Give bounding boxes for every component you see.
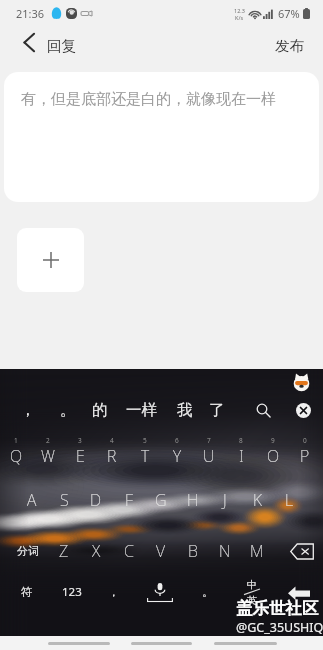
button[interactable]: 我 — [166, 395, 204, 425]
button[interactable]: 8 — [225, 431, 257, 475]
staticText: K — [253, 489, 262, 511]
button[interactable]: J — [209, 478, 241, 522]
button[interactable]: V — [145, 529, 177, 573]
staticText: M — [250, 540, 264, 562]
button[interactable]: Backspace — [281, 531, 323, 571]
staticText: W — [41, 445, 55, 467]
button[interactable]: 3 — [64, 431, 96, 475]
staticText: 一样 — [126, 400, 157, 420]
staticText: 12.3 — [234, 7, 245, 14]
staticText: T — [141, 445, 150, 467]
button[interactable]: 一样 — [122, 395, 160, 425]
staticText: S — [60, 489, 69, 511]
staticText: 盖乐世社区 — [236, 598, 319, 619]
button[interactable]: 分词 — [4, 530, 52, 572]
button[interactable]: Recents — [214, 642, 277, 645]
staticText: O — [267, 445, 280, 467]
button[interactable]: 中 — [237, 576, 267, 592]
button[interactable]: 7 — [193, 431, 225, 475]
staticText: 67% — [278, 6, 300, 21]
staticText: 英 — [247, 594, 257, 607]
button[interactable]: 6 — [161, 431, 193, 475]
button[interactable]: B — [177, 529, 209, 573]
button[interactable]: 123 — [50, 571, 94, 613]
button[interactable]: K — [241, 478, 273, 522]
button[interactable]: Back — [48, 642, 110, 645]
staticText: I — [239, 445, 244, 467]
staticText: 的 — [92, 400, 108, 420]
staticText: V — [156, 540, 166, 562]
button[interactable]: G — [145, 478, 177, 522]
staticText: Y — [173, 445, 182, 467]
button[interactable]: Add image — [17, 228, 84, 292]
staticText: 分词 — [17, 544, 39, 558]
staticText: C — [124, 540, 134, 562]
button[interactable]: 发布 — [275, 37, 305, 55]
button[interactable]: C — [113, 529, 145, 573]
button[interactable] — [232, 571, 272, 613]
staticText: 21:36 — [16, 6, 45, 21]
staticText: D — [90, 489, 102, 511]
button[interactable]: L — [273, 478, 305, 522]
button[interactable]: Back — [15, 28, 43, 56]
staticText: 4 — [110, 436, 114, 445]
staticText: G — [155, 489, 167, 511]
staticText: U — [203, 445, 215, 467]
button[interactable]: 。 — [190, 571, 226, 613]
button[interactable]: ， — [9, 395, 47, 425]
staticText: B — [188, 540, 198, 562]
button[interactable]: X — [80, 529, 112, 573]
button[interactable]: A — [16, 478, 48, 522]
staticText: L — [285, 489, 294, 511]
staticText: @GC_35USHIQ — [236, 619, 323, 636]
staticText: E — [76, 445, 85, 467]
staticText: H — [187, 489, 199, 511]
staticText: 9 — [271, 436, 275, 445]
button[interactable]: Home — [131, 642, 192, 645]
staticText: 。 — [60, 400, 76, 420]
button[interactable]: Z — [48, 529, 80, 573]
button[interactable]: 英 — [237, 592, 267, 608]
staticText: 回复 — [47, 37, 77, 55]
button[interactable]: M — [241, 529, 273, 573]
button[interactable]: H — [177, 478, 209, 522]
button[interactable]: 4 — [96, 431, 128, 475]
staticText: 3 — [78, 436, 82, 445]
button[interactable]: 9 — [257, 431, 289, 475]
button[interactable]: 2 — [32, 431, 64, 475]
staticText: K/s — [235, 14, 244, 21]
staticText: X — [92, 540, 101, 562]
staticText: Q — [10, 445, 23, 467]
staticText: 有，但是底部还是白的，就像现在一样 — [21, 90, 276, 109]
button[interactable]: 回复 — [47, 26, 77, 66]
button[interactable]: F — [113, 478, 145, 522]
staticText: R — [107, 445, 117, 467]
button[interactable]: Voice input and space — [120, 570, 200, 614]
button[interactable]: 符 — [7, 571, 47, 613]
button[interactable]: Input method assistant — [291, 372, 311, 392]
button[interactable]: Enter — [277, 571, 321, 613]
button[interactable]: N — [209, 529, 241, 573]
button[interactable]: Search — [249, 396, 277, 424]
staticText: F — [125, 489, 133, 511]
button[interactable]: Close keyboard — [289, 396, 317, 424]
button[interactable]: 了 — [198, 395, 236, 425]
button[interactable]: 。 — [49, 395, 87, 425]
button[interactable]: 0 — [289, 431, 321, 475]
staticText: 了 — [209, 400, 225, 420]
staticText: 我 — [177, 400, 193, 420]
staticText: N — [219, 540, 231, 562]
button[interactable]: 1 — [0, 431, 32, 475]
button[interactable]: 有，但是底部还是白的，就像现在一样 — [4, 72, 319, 202]
button[interactable]: D — [80, 478, 112, 522]
button[interactable]: ， — [96, 571, 132, 613]
button[interactable]: 5 — [129, 431, 161, 475]
staticText: 123 — [62, 584, 82, 600]
button[interactable]: S — [48, 478, 80, 522]
staticText: 6 — [175, 436, 179, 445]
staticText: 中 — [247, 578, 257, 591]
staticText: 发布 — [275, 37, 305, 55]
staticText: A — [27, 489, 37, 511]
staticText: 符 — [21, 585, 33, 599]
button[interactable]: 的 — [81, 395, 119, 425]
